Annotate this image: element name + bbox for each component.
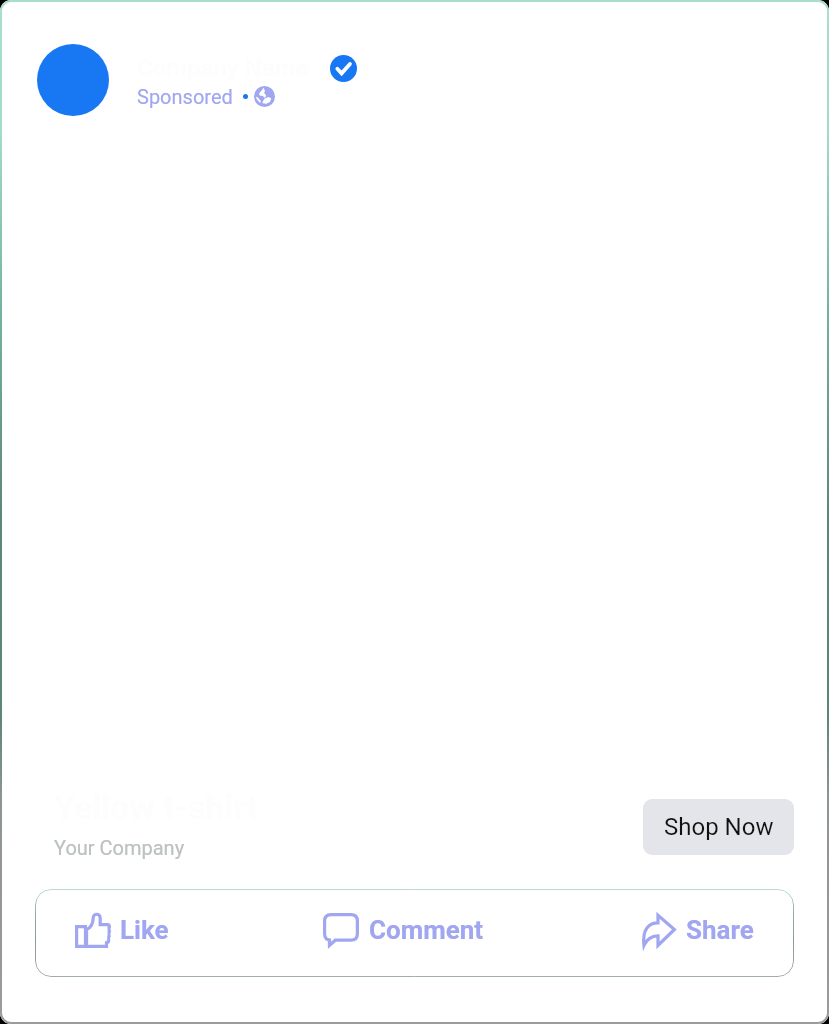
other: Comment: [323, 913, 359, 947]
staticText: Your Company: [54, 836, 185, 859]
button[interactable]: Shop Now: [643, 799, 794, 855]
other: Like: [75, 913, 110, 948]
other: Share: [642, 914, 676, 947]
staticText: Share: [686, 915, 754, 945]
button[interactable]: Company Name: [37, 44, 809, 116]
other: Verified: [330, 55, 357, 82]
staticText: Sponsored: [137, 85, 233, 108]
staticText: Shop Now: [664, 813, 774, 841]
staticText: Like: [120, 915, 169, 945]
staticText: Comment: [369, 915, 484, 945]
button[interactable]: Comment: [323, 889, 484, 977]
other: Public: [254, 86, 275, 107]
button[interactable]: Share: [642, 889, 754, 977]
button[interactable]: Like: [75, 889, 169, 977]
